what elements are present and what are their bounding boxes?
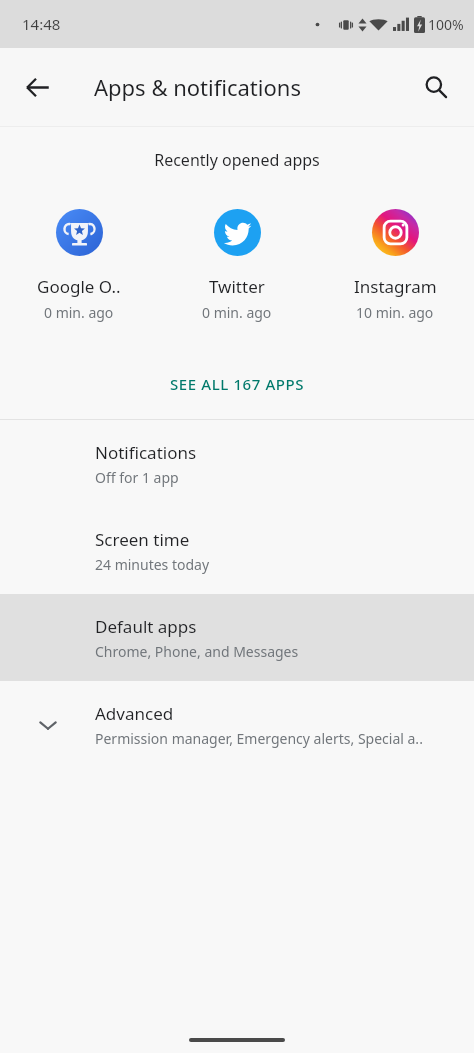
staticText: 14:48 (22, 14, 61, 34)
staticText: 0 min. ago (202, 303, 272, 322)
staticText: Advanced (95, 702, 174, 725)
staticText: Instagram (354, 275, 437, 298)
staticText: Notifications (95, 441, 197, 464)
staticText: SEE ALL 167 APPS (170, 374, 305, 394)
staticText: 0 min. ago (44, 303, 114, 322)
staticText: Permission manager, Emergency alerts, Sp… (95, 729, 423, 748)
staticText: Google O.. (37, 275, 121, 298)
staticText: Twitter (209, 275, 265, 298)
button[interactable]: Instagram (316, 207, 474, 324)
button[interactable]: Search (410, 61, 462, 113)
staticText: Recently opened apps (0, 149, 474, 171)
button[interactable]: Notifications (0, 420, 474, 507)
button[interactable]: Google O.. (0, 207, 158, 324)
button[interactable]: Screen time (0, 507, 474, 594)
staticText: 24 minutes today (95, 555, 210, 574)
staticText: 10 min. ago (356, 303, 434, 322)
button[interactable]: Back (11, 61, 63, 113)
staticText: Screen time (95, 528, 190, 551)
staticText: Off for 1 app (95, 468, 179, 487)
button[interactable]: Default apps (0, 594, 474, 681)
button[interactable]: Twitter (158, 207, 316, 324)
staticText: Default apps (95, 615, 197, 638)
staticText: 100% (428, 15, 464, 34)
staticText: Chrome, Phone, and Messages (95, 642, 299, 661)
button[interactable]: Advanced (0, 681, 474, 768)
button[interactable]: SEE ALL 167 APPS (0, 366, 474, 402)
staticText: Apps & notifications (94, 72, 301, 102)
